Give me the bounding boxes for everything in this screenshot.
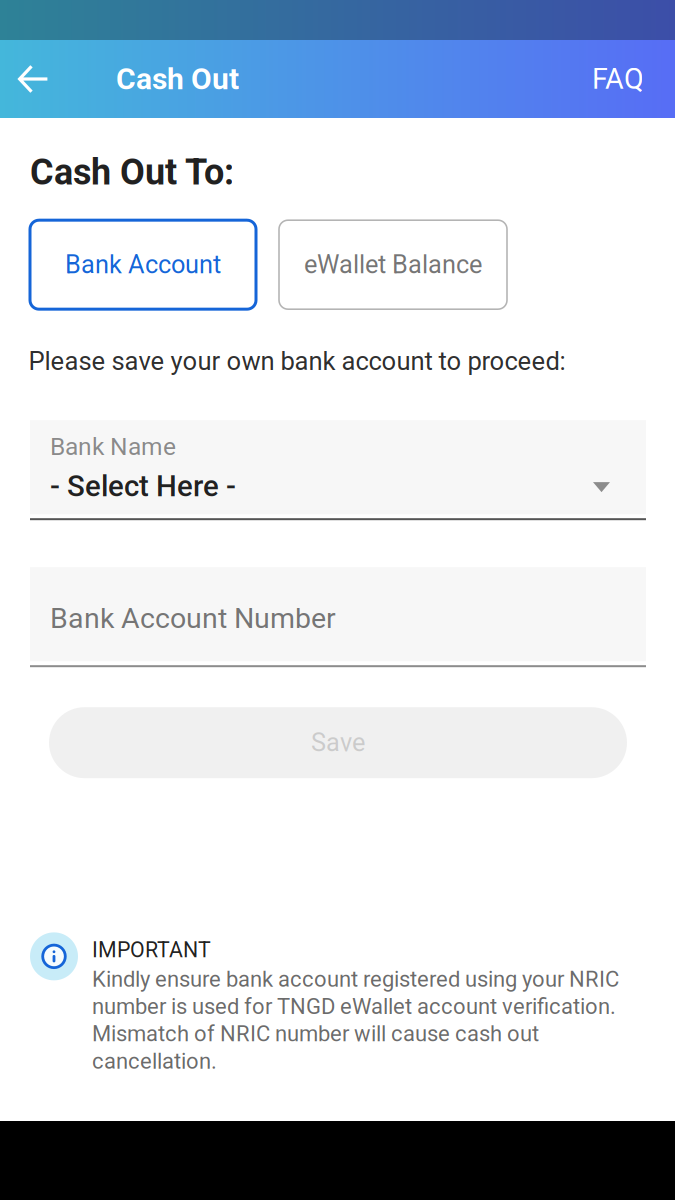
staticText: eWallet Balance (304, 250, 482, 279)
staticText: Bank Name (50, 432, 176, 461)
button[interactable]: Bank Account (30, 220, 256, 309)
staticText: Cash Out To: (30, 151, 234, 193)
button[interactable]: eWallet Balance (279, 220, 507, 309)
button[interactable]: Save (49, 707, 627, 778)
staticText: Bank Account Number (50, 601, 336, 635)
staticText: FAQ (592, 62, 644, 96)
staticText: Cash Out (116, 61, 239, 97)
staticText: Bank Account (65, 250, 221, 279)
staticText: Save (311, 728, 365, 757)
button[interactable]: FAQ (576, 40, 660, 118)
staticText: Kindly ensure bank account registered us… (92, 966, 619, 1074)
staticText: - Select Here - (50, 469, 236, 503)
staticText: IMPORTANT (92, 937, 211, 962)
staticText: Please save your own bank account to pro… (28, 346, 565, 376)
button[interactable]: Back (0, 40, 67, 118)
